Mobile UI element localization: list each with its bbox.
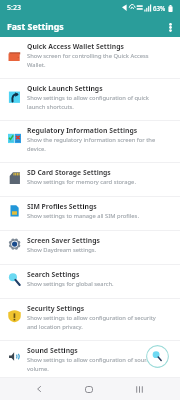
staticText: 5:23 xyxy=(7,3,21,13)
staticText: Show settings for global search. xyxy=(27,280,165,288)
staticText: SD Card Storage Settings xyxy=(27,168,167,177)
staticText: Quick Access Wallet Settings xyxy=(27,42,167,51)
button[interactable]: Sound Settings xyxy=(0,341,180,378)
staticText: 63% xyxy=(153,4,166,12)
staticText: Security Settings xyxy=(27,304,167,313)
button[interactable]: Regulatory Information Settings xyxy=(0,121,180,163)
button[interactable]: Screen Saver Settings xyxy=(0,231,180,265)
staticText: Show Daydream settings. xyxy=(27,246,165,254)
staticText: Sound Settings xyxy=(27,346,167,355)
staticText: Quick Launch Settings xyxy=(27,84,167,93)
staticText: Screen Saver Settings xyxy=(27,236,167,245)
staticText: Show settings to allow configuration of … xyxy=(27,94,165,110)
button[interactable]: Back xyxy=(22,378,56,400)
button[interactable]: Search Settings xyxy=(0,265,180,299)
staticText: Show the regulatory information screen f… xyxy=(27,136,165,152)
button[interactable]: SD Card Storage Settings xyxy=(0,163,180,197)
button[interactable]: Quick Access Wallet Settings xyxy=(0,37,180,79)
staticText: Search Settings xyxy=(27,270,167,279)
button[interactable]: Home xyxy=(72,378,106,400)
button[interactable]: Security Settings xyxy=(0,299,180,341)
staticText: Show settings to allow configuration of … xyxy=(27,356,165,372)
button[interactable]: Recents xyxy=(122,378,156,400)
button[interactable]: More options xyxy=(160,17,180,37)
button[interactable]: SIM Profiles Settings xyxy=(0,197,180,231)
button[interactable]: Quick Launch Settings xyxy=(0,79,180,121)
staticText: Show screen for controlling the Quick Ac… xyxy=(27,52,165,68)
staticText: Fast Settings xyxy=(7,21,64,33)
staticText: Regulatory Information Settings xyxy=(27,126,167,135)
staticText: Show settings to allow configuration of … xyxy=(27,314,165,330)
button[interactable]: Search xyxy=(146,345,169,368)
staticText: Show settings to manage all SIM profiles… xyxy=(27,212,165,220)
staticText: Show settings for memory card storage. xyxy=(27,178,165,186)
staticText: SIM Profiles Settings xyxy=(27,202,167,211)
